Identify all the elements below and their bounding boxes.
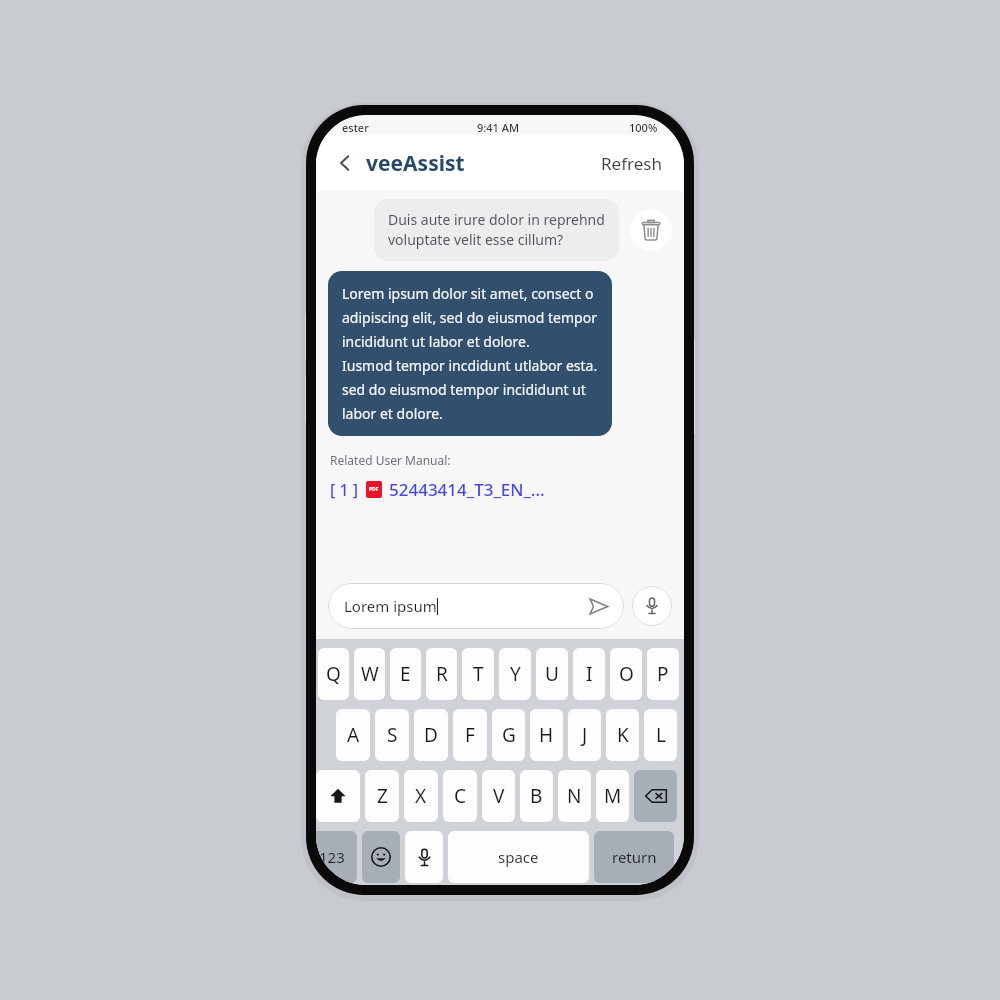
button[interactable]: N xyxy=(558,770,591,822)
staticText: F xyxy=(465,722,475,748)
staticText: I xyxy=(586,661,593,687)
staticText: E xyxy=(400,661,411,687)
button[interactable]: Dictate xyxy=(405,831,443,883)
button[interactable]: H xyxy=(530,709,563,761)
button[interactable]: 123 xyxy=(316,831,357,883)
staticText: B xyxy=(530,783,543,809)
button[interactable]: P xyxy=(647,648,679,700)
staticText: H xyxy=(539,722,554,748)
staticText: 100% xyxy=(629,120,658,135)
staticText: J xyxy=(582,722,588,748)
staticText: C xyxy=(454,783,467,809)
staticText: Y xyxy=(510,661,521,687)
button[interactable]: Z xyxy=(365,770,399,822)
staticText: S xyxy=(387,722,398,748)
button[interactable]: return xyxy=(594,831,674,883)
staticText: PDF xyxy=(369,486,379,493)
staticText: Duis aute irure dolor in reprehnd volupt… xyxy=(388,210,605,250)
staticText: return xyxy=(612,847,657,867)
button[interactable]: Y xyxy=(499,648,531,700)
button[interactable]: L xyxy=(644,709,677,761)
button[interactable]: X xyxy=(404,770,438,822)
button[interactable]: Back xyxy=(328,146,362,180)
button[interactable]: A xyxy=(336,709,370,761)
button[interactable]: Emoji xyxy=(362,831,400,883)
button[interactable]: Lorem ipsum dolor sit amet, consect o ad… xyxy=(328,271,612,436)
staticText: V xyxy=(493,783,505,809)
staticText: D xyxy=(424,722,438,748)
staticText: K xyxy=(617,722,629,748)
button[interactable]: Voice input xyxy=(632,586,672,626)
staticText: veeAssist xyxy=(366,149,465,178)
staticText: 123 xyxy=(319,847,345,867)
staticText: 52443414_T3_EN_... xyxy=(389,478,545,501)
button[interactable]: B xyxy=(520,770,553,822)
button[interactable]: Lorem ipsum xyxy=(328,583,624,629)
staticText: W xyxy=(361,661,379,687)
staticText: Lorem ipsum xyxy=(344,596,437,616)
staticText: M xyxy=(604,783,622,809)
button[interactable]: J xyxy=(568,709,601,761)
button[interactable]: O xyxy=(610,648,642,700)
staticText: L xyxy=(656,722,666,748)
button[interactable]: G xyxy=(492,709,525,761)
staticText: R xyxy=(436,661,448,687)
button[interactable]: W xyxy=(354,648,385,700)
button[interactable]: I xyxy=(573,648,605,700)
button[interactable]: Shift xyxy=(316,770,360,822)
button[interactable]: F xyxy=(453,709,487,761)
button[interactable]: Refresh xyxy=(597,148,666,179)
staticText: Lorem ipsum dolor sit amet, consect o ad… xyxy=(342,284,598,423)
staticText: 9:41 AM xyxy=(477,120,520,135)
staticText: ester xyxy=(342,120,369,135)
button[interactable]: D xyxy=(414,709,448,761)
button[interactable]: E xyxy=(390,648,421,700)
staticText: G xyxy=(502,722,516,748)
button[interactable]: Backspace xyxy=(634,770,677,822)
button[interactable]: Send xyxy=(584,592,612,620)
staticText: T xyxy=(473,661,484,687)
button[interactable]: C xyxy=(443,770,477,822)
staticText: Related User Manual: xyxy=(330,452,451,468)
staticText: [ 1 ] xyxy=(330,479,359,501)
staticText: Z xyxy=(377,783,388,809)
button[interactable]: M xyxy=(596,770,629,822)
button[interactable]: Duis aute irure dolor in reprehnd volupt… xyxy=(374,199,619,261)
button[interactable]: Q xyxy=(318,648,349,700)
button[interactable]: U xyxy=(536,648,568,700)
staticText: N xyxy=(567,783,582,809)
button[interactable]: V xyxy=(482,770,515,822)
staticText: space xyxy=(498,847,539,867)
staticText: A xyxy=(347,722,360,748)
button[interactable]: R xyxy=(426,648,457,700)
staticText: Q xyxy=(326,661,341,687)
button[interactable]: space xyxy=(448,831,589,883)
staticText: X xyxy=(415,783,427,809)
staticText: O xyxy=(619,661,634,687)
staticText: U xyxy=(545,661,559,687)
button[interactable]: S xyxy=(375,709,409,761)
button[interactable]: K xyxy=(606,709,639,761)
button[interactable]: [ 1 ] xyxy=(330,478,545,501)
button[interactable]: Delete xyxy=(630,209,672,251)
staticText: Refresh xyxy=(601,152,662,175)
staticText: P xyxy=(657,661,669,687)
button[interactable]: T xyxy=(462,648,494,700)
